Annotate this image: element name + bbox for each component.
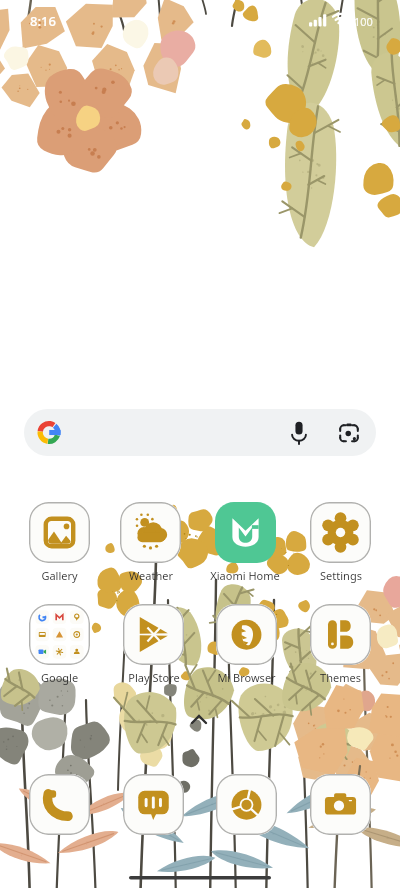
button[interactable]: Camera (310, 774, 371, 835)
button[interactable]: Gallery (29, 502, 90, 563)
button[interactable]: Chrome (216, 774, 277, 835)
staticText: 100 (354, 14, 373, 29)
button[interactable]: Themes (310, 604, 371, 665)
staticText: Play Store (128, 670, 180, 685)
staticText: Xiaomi Home (210, 568, 280, 583)
staticText: Gallery (41, 568, 78, 583)
button[interactable]: Search (24, 409, 376, 456)
staticText: Mi Browser (217, 670, 276, 685)
button[interactable]: Weather (120, 502, 181, 563)
staticText: Settings (320, 568, 362, 583)
button[interactable]: Xiaomi Home (215, 502, 276, 563)
staticText: 8:16 (30, 12, 56, 30)
button[interactable]: Phone (29, 774, 90, 835)
staticText: Google (41, 670, 79, 685)
button[interactable]: Settings (310, 502, 371, 563)
staticText: Themes (320, 670, 361, 685)
button[interactable]: Messages (123, 774, 184, 835)
button[interactable]: Play Store (123, 604, 184, 665)
button[interactable]: Mi Browser (216, 604, 277, 665)
button[interactable]: Google folder (29, 604, 90, 665)
staticText: Weather (129, 568, 173, 583)
